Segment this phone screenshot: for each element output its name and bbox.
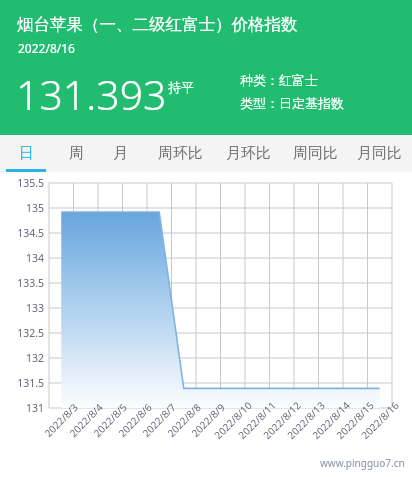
staticText: 周 [69, 144, 84, 163]
staticText: www.pingguo7.cn [320, 456, 405, 470]
staticText: 月同比 [357, 144, 402, 163]
staticText: 2022/8/11 [235, 398, 279, 442]
staticText: 2022/8/13 [284, 398, 328, 442]
staticText: 2022/8/15 [333, 398, 377, 442]
button[interactable]: 周同比 [284, 135, 346, 172]
staticText: 132 [25, 351, 44, 365]
staticText: 2022/8/16 [358, 398, 402, 442]
button[interactable]: 日 [9, 135, 43, 172]
staticText: 日 [19, 144, 34, 163]
staticText: 月 [113, 144, 128, 163]
staticText: 2022/8/9 [188, 400, 228, 440]
staticText: 周环比 [158, 144, 203, 163]
staticText: 类型：日定基指数 [240, 95, 344, 111]
staticText: 月环比 [226, 144, 271, 163]
staticText: 2022/8/3 [41, 400, 81, 440]
button[interactable]: 周 [59, 135, 93, 172]
staticText: 135.5 [17, 176, 44, 190]
staticText: 种类：红富士 [240, 72, 318, 88]
staticText: 2022/8/10 [211, 398, 255, 442]
staticText: 2022/8/4 [66, 400, 106, 440]
button[interactable]: 月环比 [217, 135, 279, 172]
staticText: 周同比 [293, 144, 338, 163]
staticText: 2022/8/8 [164, 400, 204, 440]
button[interactable]: 月同比 [348, 135, 410, 172]
staticText: 135 [25, 201, 44, 215]
staticText: 2022/8/14 [309, 398, 353, 442]
staticText: 持平 [168, 79, 194, 95]
staticText: 134.5 [17, 226, 44, 240]
staticText: 131.5 [17, 376, 44, 390]
staticText: 131 [25, 401, 44, 415]
staticText: 2022/8/6 [115, 400, 155, 440]
staticText: 2022/8/16 [18, 40, 75, 56]
staticText: 133 [25, 301, 44, 315]
staticText: 2022/8/5 [90, 400, 130, 440]
button[interactable]: 周环比 [149, 135, 211, 172]
staticText: 131.393 [16, 66, 167, 122]
staticText: 2022/8/12 [260, 398, 304, 442]
staticText: 134 [25, 251, 44, 265]
staticText: 133.5 [17, 276, 44, 290]
staticText: 2022/8/7 [139, 400, 179, 440]
button[interactable]: 月 [103, 135, 137, 172]
staticText: 烟台苹果（一、二级红富士）价格指数 [17, 14, 298, 35]
staticText: 132.5 [17, 326, 44, 340]
